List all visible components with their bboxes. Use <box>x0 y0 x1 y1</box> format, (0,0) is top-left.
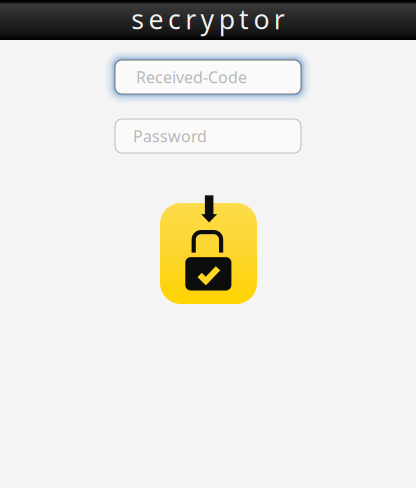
staticText: secryptor <box>131 1 285 37</box>
staticText: Password <box>133 125 207 147</box>
staticText: Received-Code <box>136 66 247 88</box>
button[interactable]: Password <box>104 108 312 164</box>
button[interactable]: Decrypt <box>148 184 268 312</box>
button[interactable]: Received-Code <box>104 49 312 105</box>
